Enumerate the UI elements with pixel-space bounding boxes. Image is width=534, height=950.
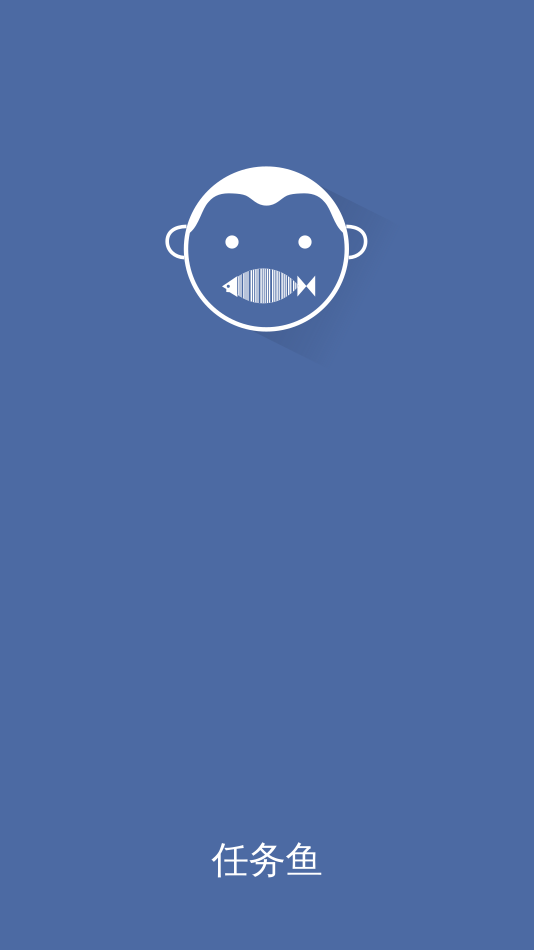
staticText: 任务鱼 (211, 837, 322, 883)
